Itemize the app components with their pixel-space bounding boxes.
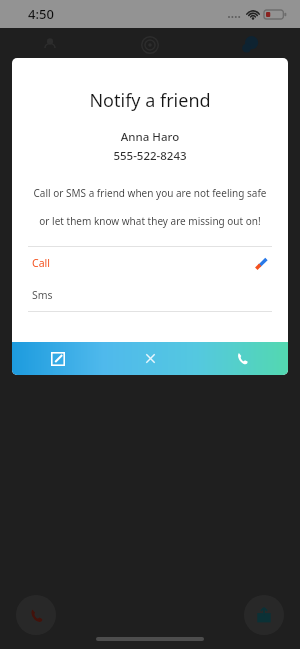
- button[interactable]: Terence: [0, 206, 300, 270]
- button[interactable]: Call: [12, 247, 288, 279]
- button[interactable]: Sms: [12, 279, 288, 311]
- staticText: or let them know what they are missing o…: [20, 214, 280, 228]
- button[interactable]: Aubz: [0, 141, 300, 205]
- staticText: 555-522-8243: [12, 148, 288, 164]
- button[interactable]: Call: [16, 595, 56, 635]
- button[interactable]: [0, 76, 300, 140]
- staticText: Notify a friend: [12, 88, 288, 113]
- button[interactable]: Close: [104, 342, 196, 375]
- staticText: 4:50: [28, 5, 54, 23]
- staticText: Terence: [88, 229, 136, 247]
- button[interactable]: Contacts: [0, 28, 100, 62]
- staticText: Sms: [32, 288, 53, 302]
- staticText: Anna Haro: [12, 129, 288, 145]
- button[interactable]: Radar: [100, 28, 200, 62]
- staticText: Call: [32, 256, 50, 270]
- button[interactable]: Call: [196, 342, 288, 375]
- staticText: Call or SMS a friend when you are not fe…: [20, 186, 280, 200]
- button[interactable]: Send SMS: [12, 342, 104, 375]
- button[interactable]: Messages: [200, 28, 300, 62]
- button[interactable]: Share: [244, 595, 284, 635]
